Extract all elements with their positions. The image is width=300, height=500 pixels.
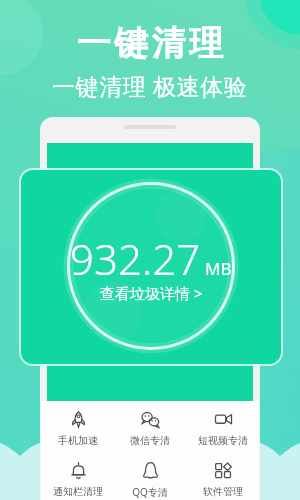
staticText: 手机加速 <box>58 434 98 447</box>
staticText: 短视频专清 <box>198 434 248 447</box>
staticText: 932.27 <box>70 230 201 287</box>
button[interactable]: 微信专清 <box>115 411 185 447</box>
staticText: MB <box>205 257 232 280</box>
button[interactable]: 软件管理 <box>188 462 258 498</box>
staticText: 一键清理 极速体验 <box>52 70 248 101</box>
staticText: 通知栏清理 <box>53 485 103 498</box>
staticText: 一键清理 <box>75 22 225 65</box>
staticText: 查看垃圾详情 > <box>100 283 203 303</box>
staticText: QQ专清 <box>132 485 168 499</box>
button[interactable]: 通知栏清理 <box>43 462 113 498</box>
button[interactable]: QQ专清 <box>115 462 185 499</box>
staticText: 微信专清 <box>130 434 170 447</box>
button[interactable]: 手机加速 <box>43 411 113 447</box>
button[interactable]: 932.27 <box>21 170 281 364</box>
button[interactable]: 短视频专清 <box>188 411 258 447</box>
staticText: 软件管理 <box>203 485 243 498</box>
